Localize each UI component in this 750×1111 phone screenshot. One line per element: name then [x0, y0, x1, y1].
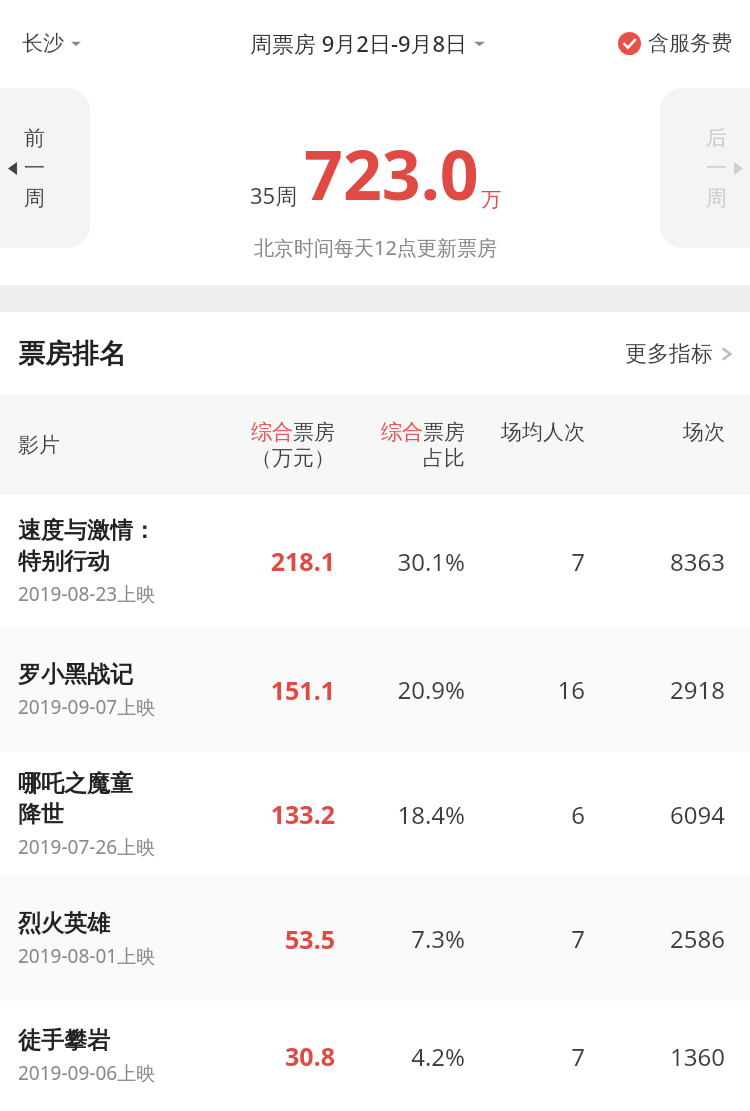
staticText: 后: [706, 125, 727, 151]
staticText: 徒手攀岩: [18, 1026, 110, 1055]
other: 含服务费已选中: [618, 32, 641, 55]
staticText: 7: [465, 545, 585, 578]
staticText: 723.0: [304, 127, 479, 220]
button[interactable]: 更多指标: [621, 332, 736, 376]
staticText: 一: [706, 155, 727, 181]
staticText: 特别行动: [18, 547, 110, 576]
staticText: 周票房 9月2日-9月8日: [250, 28, 468, 58]
staticText: 2019-09-06上映: [18, 1060, 156, 1086]
staticText: （万元）: [251, 445, 335, 471]
staticText: 30.1%: [335, 545, 465, 578]
staticText: 2019-07-26上映: [18, 834, 156, 860]
staticText: 降世: [18, 800, 64, 829]
staticText: 罗小黑战记: [18, 660, 133, 689]
staticText: 8363: [585, 545, 725, 578]
staticText: 7: [465, 1040, 585, 1073]
button[interactable]: 后: [660, 88, 750, 248]
button[interactable]: 徒手攀岩: [0, 1001, 750, 1111]
staticText: 含服务费: [648, 30, 732, 56]
staticText: 35周: [250, 180, 298, 210]
staticText: 哪吒之魔童: [18, 769, 133, 798]
staticText: 影片: [18, 432, 195, 458]
staticText: 2019-08-23上映: [18, 581, 156, 607]
staticText: 烈火英雄: [18, 909, 110, 938]
staticText: 一: [24, 155, 45, 181]
staticText: 票房排名: [18, 337, 126, 371]
staticText: 2586: [585, 922, 725, 955]
staticText: 4.2%: [335, 1040, 465, 1073]
staticText: 1360: [585, 1040, 725, 1073]
staticText: 218.1: [195, 544, 335, 578]
button[interactable]: 周票房 9月2日-9月8日: [244, 22, 491, 64]
staticText: 133.2: [195, 797, 335, 831]
staticText: 更多指标: [625, 340, 713, 368]
button[interactable]: 含服务费已选中: [614, 24, 736, 62]
staticText: 2918: [585, 673, 725, 706]
button[interactable]: 前: [0, 88, 90, 248]
staticText: 前: [24, 125, 45, 151]
staticText: 18.4%: [335, 798, 465, 831]
staticText: 16: [465, 673, 585, 706]
staticText: 20.9%: [335, 673, 465, 706]
staticText: 53.5: [195, 922, 335, 956]
button[interactable]: 罗小黑战记: [0, 627, 750, 752]
staticText: 周: [24, 185, 45, 211]
staticText: 场次: [683, 419, 725, 445]
staticText: 6094: [585, 798, 725, 831]
staticText: 7: [465, 922, 585, 955]
staticText: 北京时间每天12点更新票房: [254, 234, 497, 261]
button[interactable]: 长沙: [18, 24, 85, 62]
staticText: 30.8: [195, 1039, 335, 1073]
button[interactable]: 速度与激情：: [0, 495, 750, 627]
staticText: 万: [481, 187, 501, 212]
staticText: 场均人次: [501, 419, 585, 445]
staticText: 速度与激情：: [18, 516, 156, 545]
staticText: 综合票房: [251, 419, 335, 445]
staticText: 151.1: [195, 673, 335, 707]
staticText: 综合票房: [381, 419, 465, 445]
staticText: 6: [465, 798, 585, 831]
staticText: 2019-09-07上映: [18, 694, 156, 720]
staticText: 长沙: [22, 30, 64, 56]
button[interactable]: 哪吒之魔童: [0, 752, 750, 876]
staticText: 2019-08-01上映: [18, 943, 156, 969]
button[interactable]: 烈火英雄: [0, 876, 750, 1001]
staticText: 7.3%: [335, 922, 465, 955]
staticText: 周: [706, 185, 727, 211]
staticText: 占比: [423, 445, 465, 471]
